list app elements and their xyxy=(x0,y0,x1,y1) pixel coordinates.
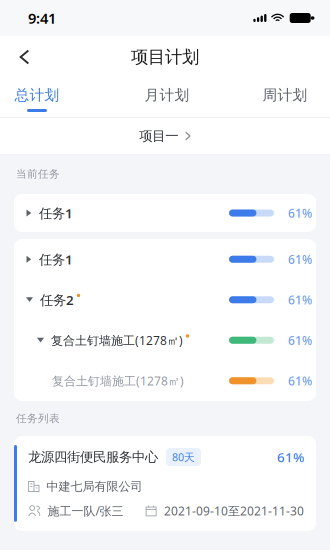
button[interactable]: 月计划 xyxy=(130,78,204,118)
staticText: 80天 xyxy=(172,450,195,464)
staticText: 项目一 xyxy=(139,128,178,144)
button[interactable]: 总计划 xyxy=(0,78,74,118)
staticText: 61% xyxy=(288,332,312,348)
staticText: 龙源四街便民服务中心 xyxy=(28,449,158,465)
staticText: 周计划 xyxy=(262,86,307,104)
button[interactable]: 任务1 xyxy=(14,194,316,232)
staticText: 总计划 xyxy=(14,86,59,104)
button[interactable]: 项目一 xyxy=(0,118,330,154)
button[interactable]: 任务2 xyxy=(14,279,316,320)
button[interactable]: 任务1 xyxy=(14,239,316,279)
button[interactable]: 复合土钉墙施工(1278㎡) xyxy=(14,320,316,360)
staticText: 61% xyxy=(288,292,312,308)
staticText: 61% xyxy=(288,205,312,221)
staticText: 61% xyxy=(277,448,304,466)
staticText: 施工一队/张三 xyxy=(47,503,123,519)
staticText: 任务2 xyxy=(40,291,74,309)
button[interactable]: 复合土钉墙施工(1278㎡) xyxy=(14,360,316,401)
staticText: 复合土钉墙施工(1278㎡) xyxy=(52,373,184,389)
staticText: 当前任务 xyxy=(16,167,60,180)
staticText: 复合土钉墙施工(1278㎡) xyxy=(51,332,183,348)
staticText: 61% xyxy=(288,251,312,267)
staticText: 任务1 xyxy=(39,204,73,222)
staticText: 2021-09-10至2021-11-30 xyxy=(164,503,304,519)
staticText: 项目计划 xyxy=(131,46,199,68)
staticText: 中建七局有限公司 xyxy=(46,479,142,494)
button[interactable]: 周计划 xyxy=(248,78,322,118)
button[interactable]: 龙源四街便民服务中心 xyxy=(0,436,330,531)
button[interactable]: Back xyxy=(0,34,50,80)
staticText: 月计划 xyxy=(144,86,189,104)
staticText: 9:41 xyxy=(28,8,56,28)
staticText: 任务列表 xyxy=(16,412,60,425)
staticText: 任务1 xyxy=(39,250,73,268)
staticText: 61% xyxy=(288,373,312,389)
